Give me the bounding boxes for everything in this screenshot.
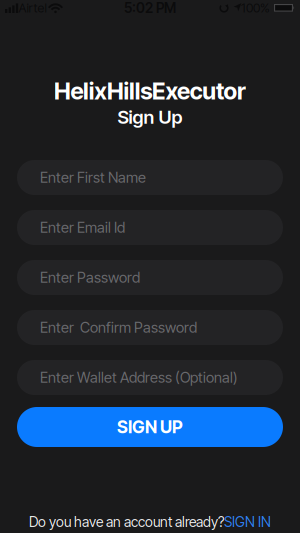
staticText: HelixHillsExecutor bbox=[54, 77, 246, 105]
staticText: Enter First Name bbox=[40, 169, 146, 186]
button[interactable]: Enter Confirm Password bbox=[17, 310, 283, 345]
staticText: Enter Confirm Password bbox=[40, 319, 197, 336]
staticText: Airtel bbox=[18, 0, 46, 16]
button[interactable]: SIGN UP bbox=[17, 407, 283, 447]
staticText: 100% bbox=[241, 0, 270, 16]
button[interactable]: Enter Password bbox=[17, 260, 283, 295]
staticText: SIGN IN bbox=[224, 513, 271, 530]
button[interactable]: Enter Wallet Address (Optional) bbox=[17, 360, 283, 395]
staticText: Sign Up bbox=[117, 106, 182, 128]
staticText: Do you have an account already? bbox=[29, 513, 224, 530]
staticText: Enter Wallet Address (Optional) bbox=[40, 369, 238, 386]
staticText: Enter Password bbox=[40, 269, 140, 286]
button[interactable]: Enter First Name bbox=[17, 160, 283, 195]
button[interactable]: SIGN IN bbox=[224, 513, 271, 530]
staticText: Enter Email Id bbox=[40, 219, 125, 236]
staticText: SIGN UP bbox=[117, 416, 183, 437]
button[interactable]: Enter Email Id bbox=[17, 210, 283, 245]
staticText: 5:02 PM bbox=[124, 0, 176, 16]
